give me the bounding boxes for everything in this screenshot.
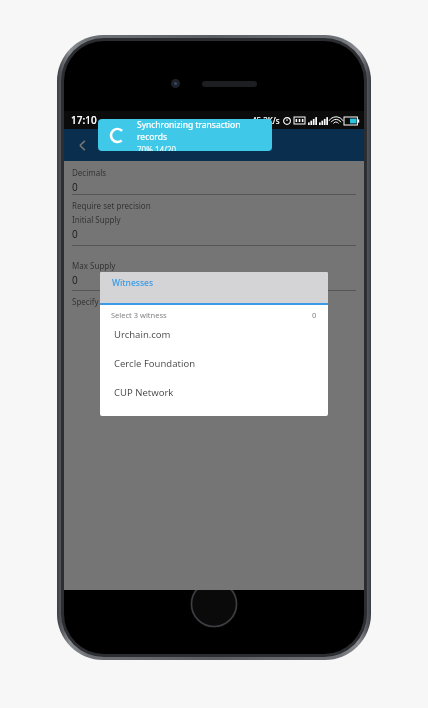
button[interactable]: Synchronizing transaction records	[98, 119, 272, 151]
staticText: Initial Supply	[72, 214, 121, 225]
staticText: 17:10	[71, 113, 97, 127]
staticText: 45.2K/s	[252, 115, 280, 126]
staticText: 0	[72, 273, 78, 287]
staticText: 0	[72, 180, 78, 194]
staticText: 0	[312, 310, 317, 320]
staticText: 0	[72, 227, 78, 241]
button[interactable]: Urchain.com	[100, 320, 328, 349]
staticText: Specify witnesses if Suppose so on	[72, 296, 202, 307]
staticText: Decimals	[72, 167, 107, 178]
button[interactable]: Back	[68, 131, 96, 159]
staticText: Cercle Foundation	[114, 357, 196, 370]
staticText: Urchain.com	[114, 328, 171, 341]
staticText: Select 3 witness	[111, 310, 167, 320]
button[interactable]: CUP Network	[100, 378, 328, 407]
button[interactable]: Cercle Foundation	[100, 349, 328, 378]
staticText: Synchronizing transaction records	[137, 119, 272, 143]
staticText: Max Supply	[72, 260, 116, 271]
staticText: Require set precision	[72, 200, 151, 211]
staticText: 70% 14/20	[137, 144, 177, 151]
staticText: CUP Network	[114, 386, 174, 399]
staticText: Witnesses	[112, 277, 154, 289]
